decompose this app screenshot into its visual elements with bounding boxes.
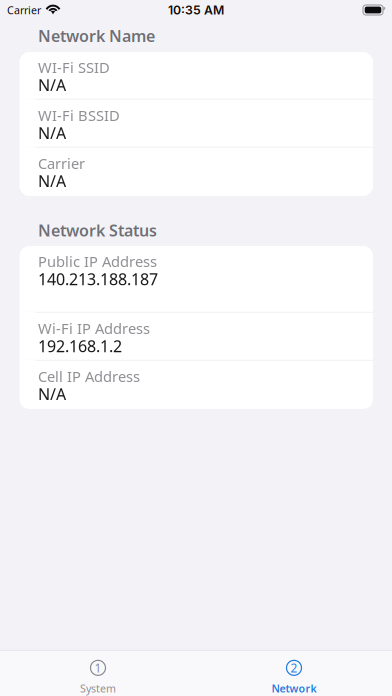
staticText: Cell IP Address	[38, 367, 140, 386]
staticText: System	[80, 681, 116, 696]
button[interactable]: 1	[0, 651, 196, 696]
staticText: 10:35 AM	[168, 3, 224, 17]
staticText: N/A	[38, 74, 66, 96]
staticText: WI-Fi SSID	[38, 58, 110, 77]
staticText: Network	[271, 681, 316, 696]
staticText: N/A	[38, 383, 66, 405]
staticText: N/A	[38, 122, 66, 144]
staticText: Network Name	[38, 25, 155, 46]
staticText: N/A	[38, 170, 66, 192]
staticText: Network Status	[38, 220, 157, 241]
staticText: Public IP Address	[38, 252, 157, 271]
staticText: Carrier	[7, 3, 41, 17]
staticText: 1	[94, 660, 101, 676]
staticText: Wi-Fi IP Address	[38, 319, 150, 338]
staticText: WI-Fi BSSID	[38, 106, 120, 125]
staticText: Carrier	[38, 154, 85, 173]
staticText: 2	[290, 660, 297, 676]
staticText: 140.213.188.187	[38, 268, 158, 290]
button[interactable]: 2	[196, 651, 392, 696]
staticText: 192.168.1.2	[38, 335, 122, 357]
